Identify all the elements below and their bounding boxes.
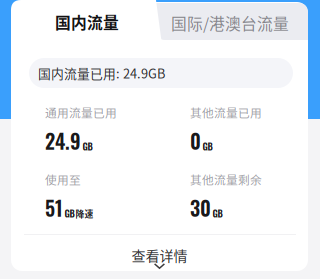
staticText: GB [82, 139, 92, 153]
staticText: GB [202, 139, 212, 153]
staticText: GB [212, 206, 222, 220]
staticText: 国内流量已用: 24.9GB [38, 64, 165, 82]
button[interactable]: 查看详情 [11, 245, 308, 279]
staticText: 国际/港澳台流量 [171, 12, 289, 34]
staticText: 30 [190, 193, 211, 223]
staticText: 24.9 [45, 126, 81, 156]
staticText: 国内流量 [55, 11, 119, 33]
staticText: 其他流量剩余 [190, 171, 262, 188]
button[interactable]: 国际/港澳台流量 [152, 4, 308, 42]
staticText: 0 [190, 126, 201, 156]
staticText: GB [64, 206, 74, 220]
button[interactable]: 国内流量 [11, 0, 163, 44]
staticText: 查看详情 [131, 245, 187, 265]
staticText: 51 [45, 193, 63, 223]
staticText: 通用流量已用 [45, 104, 117, 121]
staticText: 降速 [75, 207, 93, 220]
staticText: 使用至 [45, 171, 81, 188]
staticText: 其他流量已用 [190, 104, 262, 121]
